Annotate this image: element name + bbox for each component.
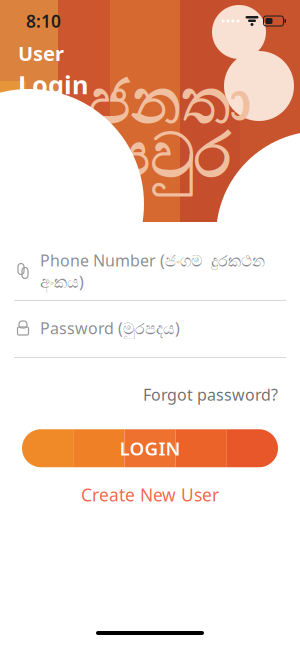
staticText: LOGIN [119,436,180,461]
staticText: User [18,40,64,67]
staticText: 8:10 [26,9,61,32]
button[interactable]: Create New User [73,477,227,512]
staticText: Phone Number (ජංගම දුරකථන අංකය) [40,250,265,292]
staticText: Login [18,68,88,101]
button[interactable]: Password (මුරපදය) [0,311,300,345]
staticText: ජනතා [89,74,251,134]
button[interactable]: Forgot password? [139,378,282,411]
staticText: Password (මුරපදය) [40,317,180,339]
staticText: පවුර [108,128,231,188]
button[interactable]: LOGIN [22,429,278,467]
staticText: Create New User [81,483,219,506]
staticText: Forgot password? [143,384,278,405]
button[interactable]: Phone Number (ජංගම දුරකථන අංකය) [0,254,300,288]
